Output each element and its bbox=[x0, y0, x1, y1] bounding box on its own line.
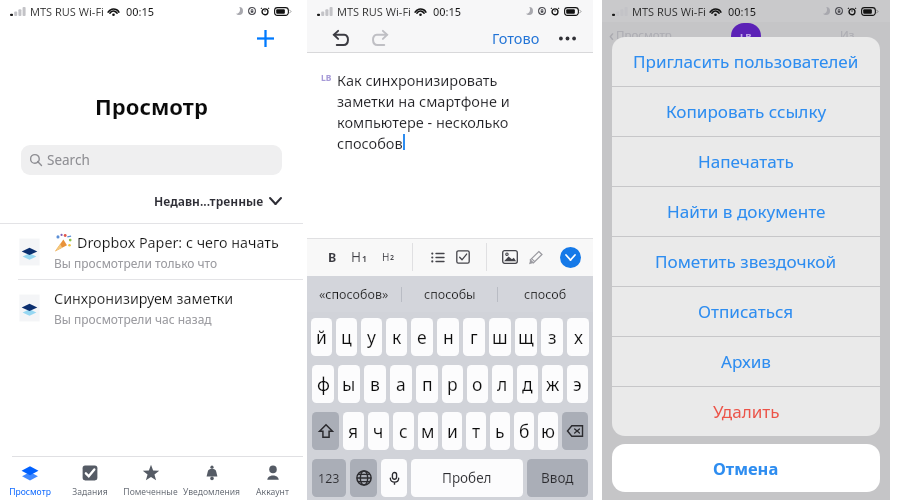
staticText: Пригласить пользователей bbox=[633, 50, 859, 73]
button[interactable]: и bbox=[442, 412, 462, 450]
button[interactable]: з bbox=[541, 318, 563, 356]
staticText: Напечатать bbox=[698, 150, 794, 173]
staticText: Пробел bbox=[442, 469, 492, 487]
button[interactable]: Архив bbox=[612, 337, 880, 386]
button[interactable]: Bulleted list bbox=[427, 247, 447, 267]
staticText: Dropbox Paper: с чего начать bbox=[77, 233, 279, 252]
button[interactable]: п bbox=[416, 365, 438, 403]
button[interactable]: «способов» bbox=[307, 276, 401, 312]
button[interactable]: Dropbox Paper: с чего начать bbox=[0, 224, 303, 279]
button[interactable]: Найти в документе bbox=[612, 187, 880, 236]
button[interactable]: ж bbox=[542, 365, 563, 403]
button[interactable]: а bbox=[390, 365, 412, 403]
staticText: л bbox=[497, 372, 508, 396]
button[interactable]: Ввод bbox=[527, 459, 588, 497]
button[interactable]: ф bbox=[312, 365, 334, 403]
button[interactable]: Backspace bbox=[562, 412, 588, 450]
button[interactable]: Удалить bbox=[612, 387, 880, 436]
button[interactable]: Пробел bbox=[411, 459, 523, 497]
button[interactable]: Checklist bbox=[453, 247, 473, 267]
button[interactable]: Shift bbox=[312, 412, 339, 450]
button[interactable]: Просмотр bbox=[0, 464, 60, 500]
staticText: Вы просмотрели только что bbox=[54, 255, 218, 271]
staticText: ‹ bbox=[609, 24, 614, 46]
button[interactable]: й bbox=[311, 318, 332, 356]
button[interactable]: е bbox=[411, 318, 433, 356]
button[interactable]: Redo bbox=[367, 25, 393, 51]
button[interactable]: More bbox=[555, 26, 579, 50]
button[interactable]: Копировать ссылку bbox=[612, 87, 880, 136]
staticText: Готово bbox=[492, 28, 540, 48]
staticText: ш bbox=[492, 325, 508, 349]
button[interactable]: н bbox=[437, 318, 459, 356]
button[interactable]: H bbox=[379, 246, 398, 268]
button[interactable]: Search bbox=[21, 145, 282, 175]
button[interactable]: Пометить звездочкой bbox=[612, 237, 880, 286]
button[interactable]: ш bbox=[489, 318, 511, 356]
button[interactable]: ы bbox=[338, 365, 360, 403]
button[interactable]: Синхронизируем заметки bbox=[0, 280, 303, 335]
staticText: Аккаунт bbox=[256, 486, 289, 498]
button[interactable]: Пригласить пользователей bbox=[612, 37, 880, 86]
button[interactable]: в bbox=[364, 365, 386, 403]
button[interactable]: Отписаться bbox=[612, 287, 880, 336]
button[interactable]: э bbox=[567, 365, 588, 403]
staticText: Просмотр bbox=[9, 486, 51, 498]
button[interactable]: с bbox=[393, 412, 414, 450]
button[interactable]: у bbox=[361, 318, 382, 356]
staticText: ы bbox=[342, 372, 356, 396]
button[interactable]: ю bbox=[538, 412, 558, 450]
button[interactable]: способ bbox=[498, 276, 593, 312]
button[interactable]: Помеченные bbox=[120, 464, 181, 500]
button[interactable]: Create bbox=[251, 24, 279, 52]
button[interactable]: к bbox=[386, 318, 407, 356]
staticText: н bbox=[443, 325, 454, 349]
button[interactable]: Отмена bbox=[612, 444, 880, 492]
button[interactable]: Задания bbox=[60, 464, 120, 500]
button[interactable]: ц bbox=[336, 318, 357, 356]
staticText: р bbox=[447, 372, 458, 396]
staticText: 2 bbox=[390, 253, 395, 263]
staticText: H bbox=[382, 250, 390, 264]
button[interactable]: м bbox=[418, 412, 438, 450]
staticText: Копировать ссылку bbox=[666, 100, 827, 123]
button[interactable]: д bbox=[517, 365, 538, 403]
staticText: щ bbox=[518, 325, 534, 349]
staticText: ю bbox=[541, 419, 555, 443]
button[interactable]: Аккаунт bbox=[242, 464, 303, 500]
button[interactable]: Insert image bbox=[500, 247, 520, 267]
button[interactable]: л bbox=[492, 365, 513, 403]
staticText: п bbox=[422, 372, 433, 396]
staticText: г bbox=[470, 325, 478, 349]
button[interactable]: ь bbox=[490, 412, 510, 450]
button[interactable]: Undo bbox=[327, 25, 353, 51]
button[interactable]: щ bbox=[515, 318, 537, 356]
button[interactable]: Уведомления bbox=[181, 464, 242, 500]
staticText: Удалить bbox=[713, 400, 780, 423]
button[interactable]: B bbox=[325, 245, 340, 270]
staticText: й bbox=[316, 325, 327, 349]
button[interactable]: Напечатать bbox=[612, 137, 880, 186]
button[interactable]: Hide keyboard bbox=[560, 247, 581, 268]
button[interactable]: т bbox=[466, 412, 486, 450]
button[interactable]: б bbox=[514, 412, 534, 450]
staticText: и bbox=[447, 419, 458, 443]
button[interactable]: о bbox=[467, 365, 488, 403]
button[interactable]: Draw bbox=[525, 247, 545, 267]
staticText: ф bbox=[317, 372, 330, 396]
button[interactable]: способы bbox=[402, 276, 497, 312]
button[interactable]: р bbox=[442, 365, 463, 403]
button[interactable]: я bbox=[343, 412, 364, 450]
button[interactable]: Готово bbox=[488, 28, 544, 48]
button[interactable]: Change language bbox=[350, 459, 377, 497]
button[interactable]: Dictate bbox=[381, 459, 407, 497]
button[interactable]: 123 bbox=[312, 459, 346, 497]
button[interactable]: Недавн...тренные bbox=[0, 189, 281, 213]
button[interactable]: ч bbox=[368, 412, 389, 450]
button[interactable]: H bbox=[348, 244, 370, 270]
staticText: в bbox=[370, 372, 380, 396]
staticText: д bbox=[522, 372, 533, 396]
button[interactable]: г bbox=[463, 318, 485, 356]
button[interactable]: х bbox=[567, 318, 589, 356]
staticText: х bbox=[574, 325, 583, 349]
